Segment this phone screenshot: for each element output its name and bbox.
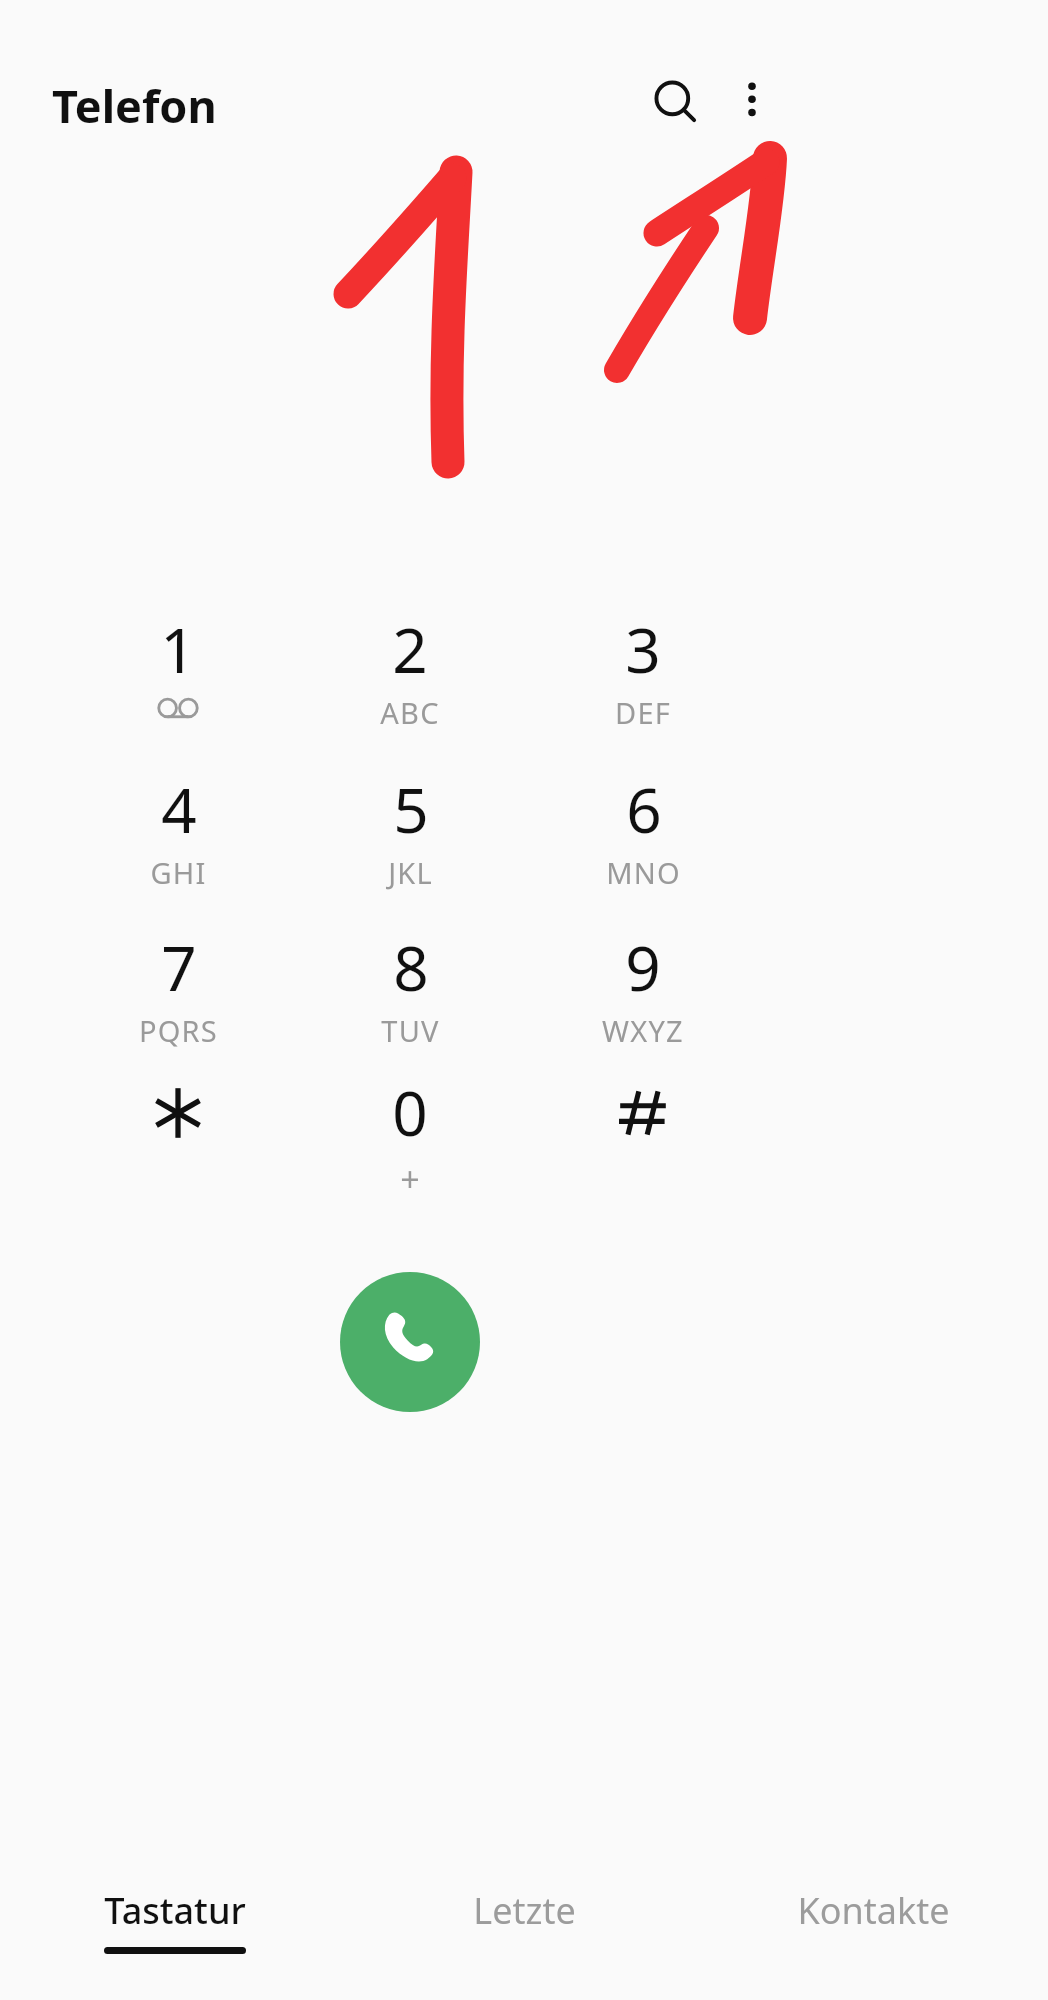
staticText: Telefon	[52, 75, 217, 136]
button[interactable]: More options	[704, 55, 800, 151]
button[interactable]: Call	[340, 1272, 480, 1412]
staticText: 4	[161, 767, 197, 851]
button[interactable]: 3	[527, 607, 759, 763]
button[interactable]: Tastatur	[0, 1850, 350, 2000]
button[interactable]: 8	[294, 925, 526, 1081]
staticText: Tastatur	[104, 1886, 246, 1935]
staticText: 3	[625, 607, 661, 691]
staticText: GHI	[150, 853, 207, 892]
staticText: TUV	[381, 1011, 440, 1050]
staticText: WXYZ	[602, 1011, 684, 1050]
staticText: MNO	[606, 853, 681, 892]
staticText: 1	[160, 607, 196, 691]
button[interactable]: Kontakte	[699, 1850, 1048, 2000]
button[interactable]: 0	[294, 1070, 526, 1226]
button[interactable]: 9	[527, 925, 759, 1081]
staticText: Letzte	[473, 1886, 576, 1935]
staticText: 5	[393, 767, 429, 851]
staticText: 7	[161, 925, 197, 1009]
staticText: 0	[392, 1070, 428, 1154]
staticText: Kontakte	[797, 1886, 950, 1935]
button[interactable]: 1	[62, 607, 294, 763]
button[interactable]: 2	[294, 607, 526, 763]
button[interactable]: 5	[294, 767, 526, 923]
staticText: PQRS	[139, 1011, 218, 1050]
button[interactable]	[527, 1070, 759, 1226]
staticText: 8	[393, 925, 429, 1009]
button[interactable]: 7	[62, 925, 294, 1081]
button[interactable]: Letzte	[350, 1850, 699, 2000]
staticText: 6	[626, 767, 662, 851]
button[interactable]: Search	[628, 55, 724, 151]
staticText: +	[400, 1156, 421, 1202]
button[interactable]: 4	[62, 767, 294, 923]
button[interactable]: 6	[527, 767, 759, 923]
staticText: ABC	[380, 693, 440, 732]
staticText: 2	[392, 607, 428, 691]
staticText: 9	[625, 925, 661, 1009]
staticText: DEF	[615, 693, 671, 732]
button[interactable]	[62, 1070, 294, 1226]
staticText: JKL	[388, 853, 433, 892]
